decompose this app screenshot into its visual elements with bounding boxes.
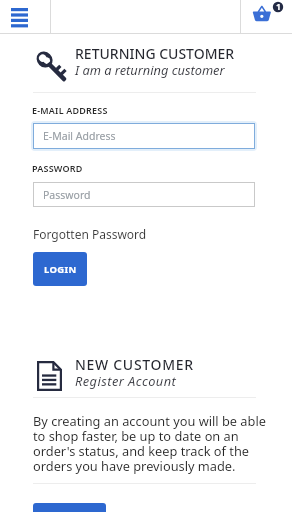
staticText: Password	[43, 188, 91, 202]
button[interactable]	[33, 503, 106, 512]
button[interactable]: Password	[33, 182, 255, 207]
staticText: RETURNING CUSTOMER	[75, 44, 235, 63]
button[interactable]: LOGIN	[33, 252, 87, 286]
staticText: E-MAIL ADDRESS	[32, 104, 108, 116]
staticText: I am a returning customer	[75, 61, 225, 78]
staticText: NEW CUSTOMER	[75, 355, 194, 374]
staticText: 1	[276, 1, 281, 13]
staticText: PASSWORD	[32, 162, 83, 174]
button[interactable]	[0, 0, 50, 33]
button[interactable]: 1	[241, 0, 292, 33]
staticText: By creating an account you will be able …	[33, 412, 266, 475]
staticText: LOGIN	[44, 263, 77, 276]
staticText: Register Account	[75, 372, 177, 389]
staticText: E-Mail Address	[43, 129, 116, 143]
staticText: Forgotten Password	[33, 226, 147, 242]
button[interactable]: E-Mail Address	[33, 123, 255, 149]
button[interactable]: Forgotten Password	[33, 226, 147, 242]
